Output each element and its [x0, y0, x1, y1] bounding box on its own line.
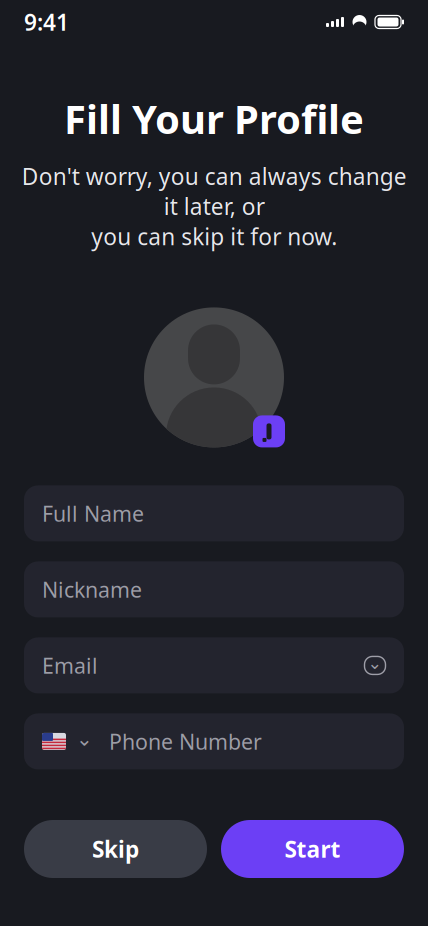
- button[interactable]: Edit profile photo: [253, 415, 285, 447]
- staticText: ⌄: [76, 728, 93, 750]
- staticText: Email: [42, 651, 98, 680]
- button[interactable]: Start: [221, 820, 404, 878]
- staticText: Fill Your Profile: [64, 92, 364, 145]
- staticText: ⌄: [367, 653, 382, 673]
- staticText: 9:41: [24, 7, 69, 37]
- staticText: Nickname: [42, 575, 142, 604]
- staticText: Skip: [92, 834, 139, 864]
- staticText: Phone Number: [109, 727, 262, 756]
- button[interactable]: Email: [24, 637, 404, 693]
- button[interactable]: ⌄: [24, 713, 404, 769]
- staticText: Don't worry, you can always change it la…: [21, 161, 406, 251]
- staticText: Full Name: [42, 499, 144, 528]
- staticText: Start: [284, 834, 340, 864]
- button[interactable]: Full Name: [24, 485, 404, 541]
- button[interactable]: Skip: [24, 820, 207, 878]
- button[interactable]: Nickname: [24, 561, 404, 617]
